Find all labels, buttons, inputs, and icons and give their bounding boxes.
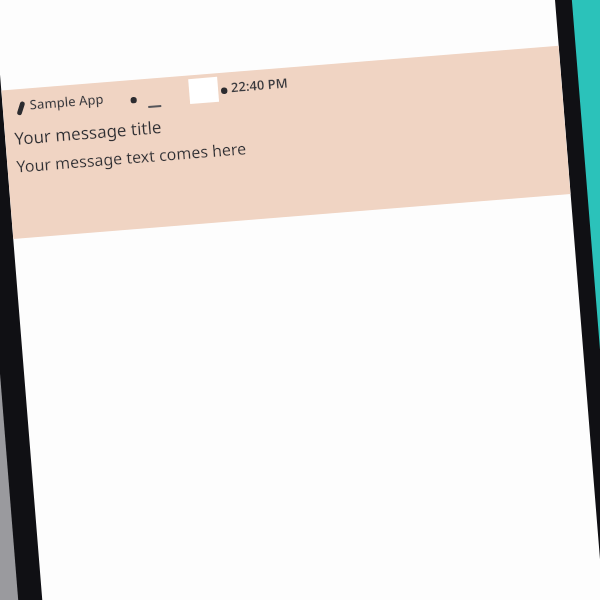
button[interactable]: Sample App notification on phone	[0, 0, 600, 600]
